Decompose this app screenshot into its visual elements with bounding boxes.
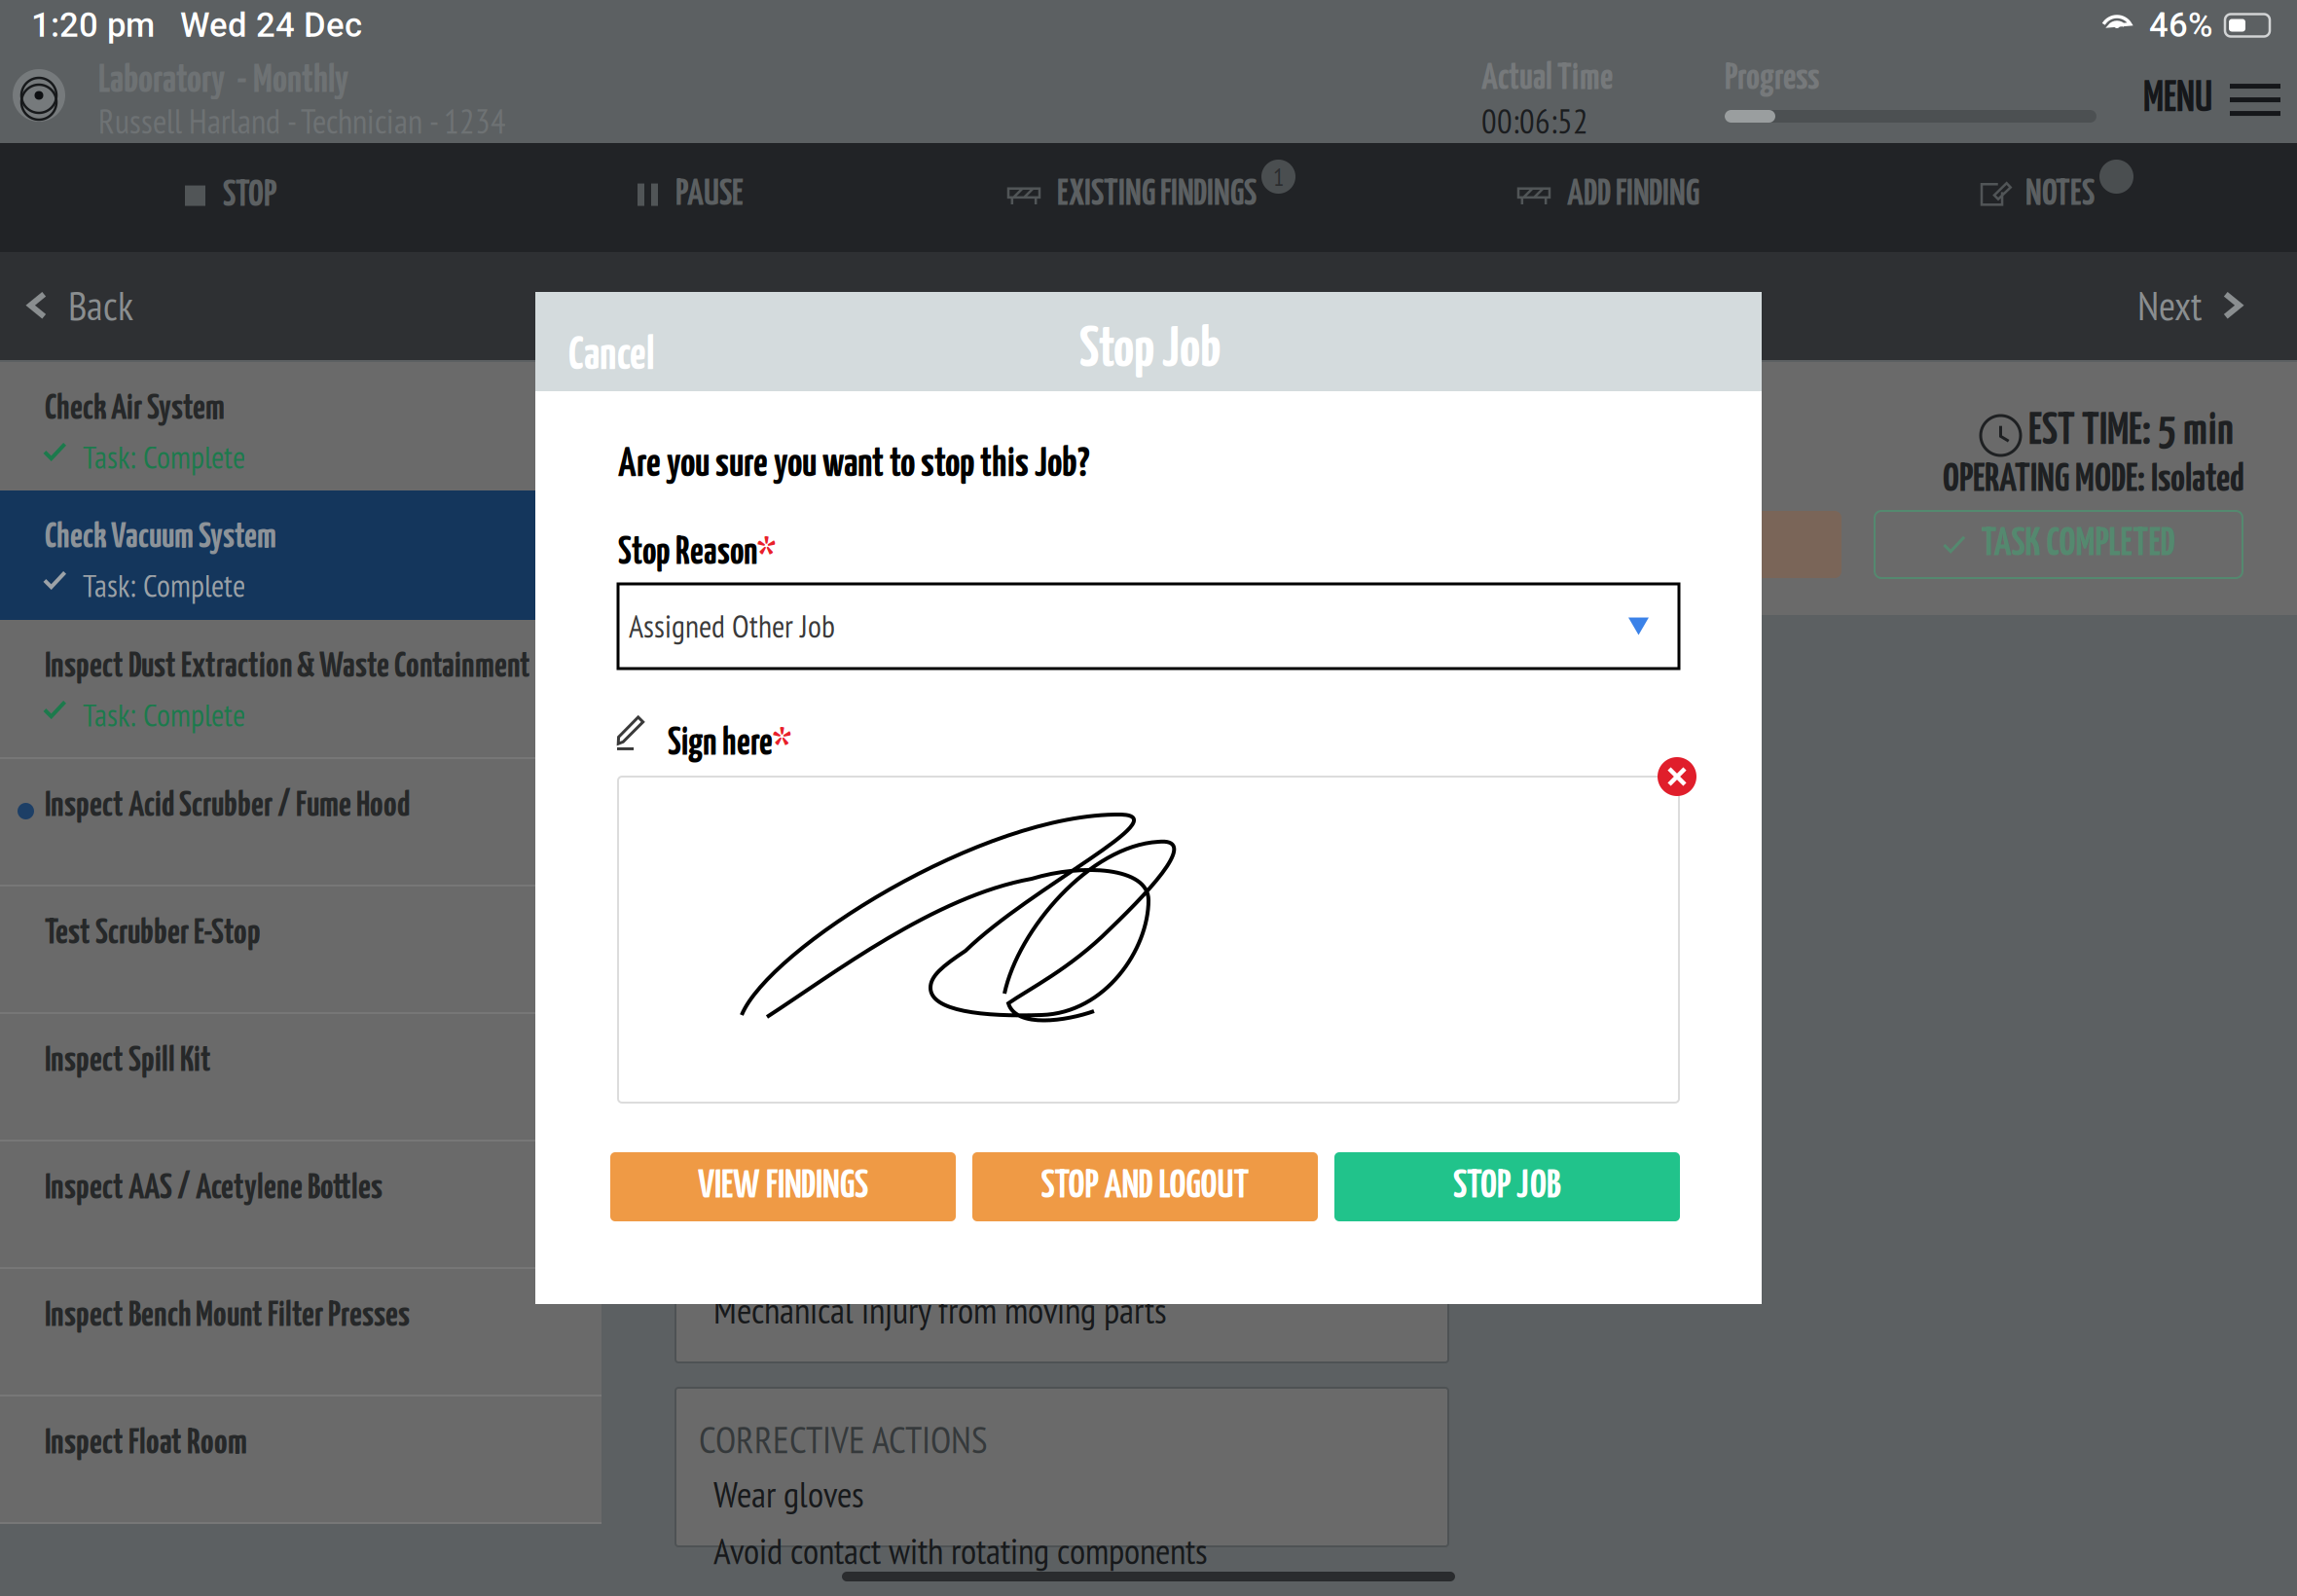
button[interactable]: Inspect Float Room xyxy=(0,1396,602,1522)
staticText: Cancel xyxy=(568,335,655,378)
button[interactable]: TASK COMPLETED xyxy=(1875,511,2242,578)
staticText: Inspect Bench Mount Filter Presses xyxy=(45,1299,410,1333)
staticText: Actual Time xyxy=(1481,61,1613,97)
button[interactable]: VIEW FINDINGS xyxy=(610,1152,956,1221)
staticText: Avoid contact with rotating components xyxy=(713,1527,1208,1574)
button[interactable]: Check Vacuum System xyxy=(0,490,602,620)
button[interactable]: Check Air System xyxy=(0,362,602,490)
staticText: STOP AND LOGOUT xyxy=(1041,1168,1249,1206)
staticText: Wed 24 Dec xyxy=(180,6,362,45)
staticText: Check Air System xyxy=(45,392,225,426)
button[interactable]: Inspect AAS / Acetylene Bottles xyxy=(0,1142,602,1267)
staticText: NOTES xyxy=(2025,177,2095,212)
button[interactable]: Inspect Dust Extraction & Waste Containm… xyxy=(0,620,602,757)
staticText: Back xyxy=(68,279,133,331)
staticText: STOP xyxy=(223,178,276,213)
staticText: VIEW FINDINGS xyxy=(698,1168,868,1206)
staticText: Progress xyxy=(1725,61,1819,97)
staticText: Test Scrubber E-Stop xyxy=(45,917,261,951)
button[interactable]: Clear signature xyxy=(1658,757,1696,796)
staticText: 00:06:52 xyxy=(1481,99,1588,143)
staticText: Inspect Dust Extraction & Waste Containm… xyxy=(45,650,530,684)
button[interactable]: Cancel xyxy=(568,335,655,378)
staticText: ADD FINDING xyxy=(1567,177,1699,212)
staticText: PAUSE xyxy=(675,177,744,212)
staticText: OPERATING MODE: Isolated xyxy=(1943,461,2244,499)
staticText: MENU xyxy=(2143,80,2212,120)
staticText: Inspect AAS / Acetylene Bottles xyxy=(45,1172,383,1206)
staticText: Task: Complete xyxy=(83,565,245,606)
button[interactable]: ADD FINDING xyxy=(1518,177,1699,212)
button[interactable]: Inspect Bench Mount Filter Presses xyxy=(0,1269,602,1395)
staticText: Stop Reason xyxy=(618,535,757,572)
button[interactable]: Next xyxy=(2137,279,2244,331)
staticText: Sign here xyxy=(668,726,773,762)
staticText: * xyxy=(773,726,791,762)
staticText: EXISTING FINDINGS xyxy=(1057,177,1257,212)
button[interactable]: Inspect Acid Scrubber / Fume Hood xyxy=(0,759,602,885)
staticText: Inspect Float Room xyxy=(45,1427,247,1461)
button[interactable]: PAUSE xyxy=(638,177,744,212)
button[interactable]: STOP AND LOGOUT xyxy=(972,1152,1318,1221)
staticText: CORRECTIVE ACTIONS xyxy=(699,1415,988,1464)
staticText: TASK COMPLETED xyxy=(1981,526,2175,563)
button[interactable]: NOTES xyxy=(1982,177,2128,212)
button[interactable]: Back xyxy=(25,279,133,331)
staticText: Wear gloves xyxy=(713,1470,864,1517)
staticText: Inspect Acid Scrubber / Fume Hood xyxy=(45,789,410,823)
staticText: EST TIME: 5 min xyxy=(2028,411,2234,453)
staticText: Russell Harland - Technician - 1234 xyxy=(98,99,506,143)
staticText: Mechanical injury from moving parts xyxy=(713,1287,1167,1334)
button[interactable]: EXISTING FINDINGS xyxy=(1008,177,1290,212)
staticText: Laboratory - Monthly xyxy=(98,62,348,100)
staticText: 1:20 pm xyxy=(31,6,155,45)
staticText: Are you sure you want to stop this Job? xyxy=(618,446,1090,485)
button[interactable]: Assigned Other Job xyxy=(618,584,1679,669)
button[interactable]: Inspect Spill Kit xyxy=(0,1014,602,1140)
staticText: STOP JOB xyxy=(1453,1168,1561,1206)
staticText: Inspect Spill Kit xyxy=(45,1044,211,1078)
staticText: Task: Complete xyxy=(83,695,245,735)
button[interactable]: STOP JOB xyxy=(1334,1152,1680,1221)
staticText: 46% xyxy=(2149,6,2213,45)
staticText: * xyxy=(757,535,776,572)
staticText: Assigned Other Job xyxy=(629,606,835,646)
staticText: Check Vacuum System xyxy=(45,521,276,555)
button[interactable]: STOP xyxy=(185,178,276,213)
staticText: Task: Complete xyxy=(83,437,245,477)
button[interactable]: Test Scrubber E-Stop xyxy=(0,887,602,1012)
button[interactable]: MENU xyxy=(2143,80,2280,120)
staticText: Stop Job xyxy=(1079,324,1221,377)
staticText: 1 xyxy=(1273,161,1284,193)
staticText: Next xyxy=(2137,279,2202,331)
